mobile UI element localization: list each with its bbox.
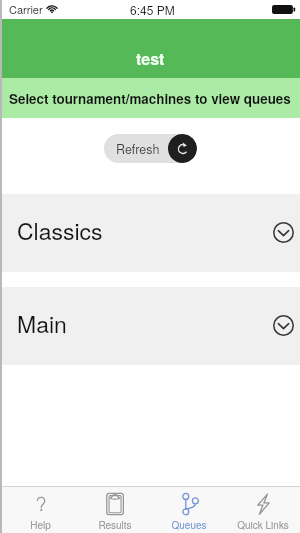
other: Refresh: [177, 143, 189, 155]
button[interactable]: Queues: [152, 487, 226, 533]
staticText: Help: [30, 518, 51, 532]
staticText: Queues: [171, 518, 207, 532]
button[interactable]: Classics: [0, 194, 300, 272]
staticText: Classics: [17, 214, 103, 247]
staticText: Select tournament/machines to view queue…: [9, 89, 291, 108]
button[interactable]: Main: [0, 287, 300, 365]
staticText: Results: [98, 518, 132, 532]
staticText: Quick Links: [237, 518, 289, 532]
staticText: Refresh: [116, 140, 160, 158]
other: Queues: [178, 493, 200, 515]
staticText: Main: [17, 307, 67, 340]
button[interactable]: Results: [78, 487, 152, 533]
button[interactable]: Quick Links: [226, 487, 300, 533]
button[interactable]: Refresh: [104, 134, 197, 163]
staticText: Carrier: [9, 1, 43, 17]
other: Quick Links: [252, 493, 274, 515]
other: Expand Main: [273, 315, 294, 336]
other: Help: [30, 493, 52, 515]
staticText: 6:45 PM: [130, 1, 175, 18]
staticText: test: [136, 47, 165, 70]
other: Results: [104, 493, 126, 515]
other: Expand Classics: [273, 222, 294, 243]
button[interactable]: Help: [3, 487, 78, 533]
